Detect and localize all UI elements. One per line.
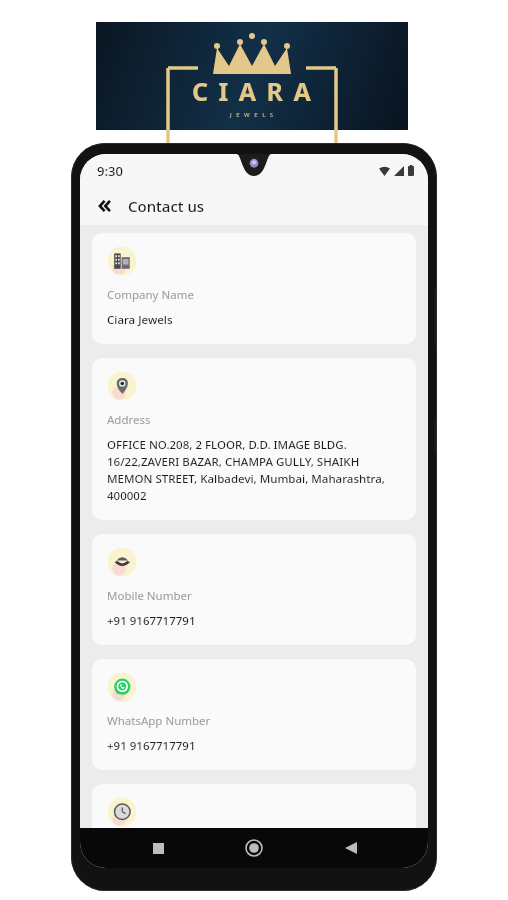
staticText: Contact us — [128, 196, 205, 216]
staticText: +91 9167717791 — [107, 738, 196, 754]
staticText: +91 9167717791 — [107, 613, 196, 629]
button[interactable]: Mobile Number — [92, 534, 416, 645]
button[interactable]: Recents — [139, 829, 177, 867]
button[interactable]: WhatsApp Number — [92, 659, 416, 770]
staticText: WhatsApp Number — [107, 713, 211, 729]
staticText: Company Name — [107, 287, 194, 303]
staticText: 9:30 — [97, 162, 123, 180]
staticText: OFFICE NO.208, 2 FLOOR, D.D. IMAGE BLDG.… — [107, 437, 401, 504]
button[interactable]: Home — [235, 829, 273, 867]
button[interactable] — [92, 784, 416, 828]
staticText: C I A R A — [192, 74, 313, 108]
staticText: Address — [107, 412, 151, 428]
staticText: J E W E L S — [230, 111, 275, 119]
staticText: Ciara Jewels — [107, 312, 173, 328]
staticText: Mobile Number — [107, 588, 192, 604]
button[interactable]: Company Name — [92, 233, 416, 344]
button[interactable]: Back — [90, 190, 122, 222]
button[interactable]: Address — [92, 358, 416, 520]
button[interactable]: Back — [332, 829, 370, 867]
